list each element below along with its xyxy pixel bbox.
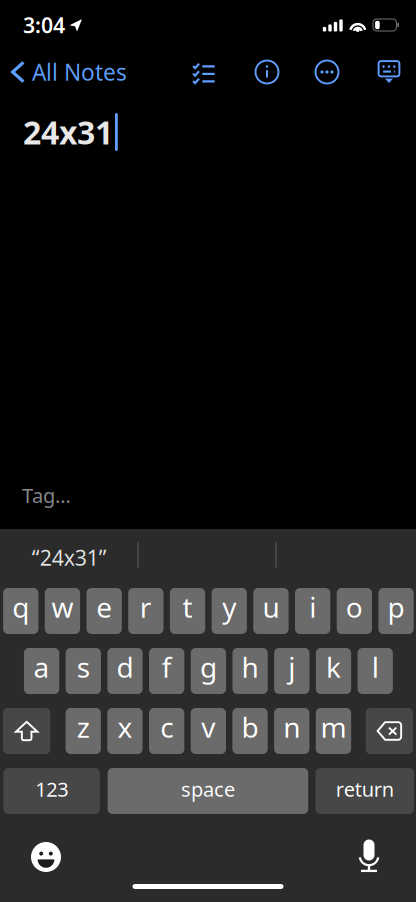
staticText: 3:04 [23,11,65,39]
button[interactable]: i [295,588,330,634]
button[interactable]: o [337,588,372,634]
staticText: m [320,708,346,746]
staticText: h [242,648,259,686]
button[interactable]: All Notes [0,51,133,93]
button[interactable]: w [45,588,80,634]
button[interactable]: y [212,588,247,634]
staticText: return [336,776,394,802]
staticText: b [241,708,258,746]
button[interactable]: m [316,708,351,754]
button[interactable]: z [66,708,101,754]
staticText: y [222,588,236,626]
staticText: g [200,648,217,686]
button[interactable]: n [274,708,309,754]
button[interactable]: “24x31” [0,535,139,580]
button[interactable]: s [66,648,101,694]
staticText: l [372,648,379,686]
staticText: e [96,588,112,626]
button[interactable]: j [274,648,309,694]
button[interactable]: r [128,588,163,634]
button[interactable]: a [24,648,59,694]
button[interactable]: Shift [3,708,50,754]
button[interactable]: Emoji [23,836,69,878]
staticText: w [51,588,73,626]
staticText: k [326,648,341,686]
button[interactable]: x [107,708,143,754]
button[interactable]: space [108,768,308,814]
button[interactable]: return [315,768,414,814]
staticText: z [77,708,90,746]
button[interactable]: Hide Keyboard [369,53,409,91]
staticText: All Notes [32,57,127,87]
button[interactable]: Info [247,53,287,91]
button[interactable]: v [191,708,226,754]
staticText: s [77,648,90,686]
staticText: x [117,708,132,746]
staticText: r [140,588,152,626]
button[interactable]: f [149,648,184,694]
staticText: “24x31” [32,543,107,572]
button[interactable]: b [232,708,268,754]
button[interactable]: e [86,588,122,634]
staticText: v [201,708,215,746]
button[interactable]: p [378,588,414,634]
staticText: 24x31 [23,111,113,153]
staticText: i [309,588,316,626]
staticText: f [162,648,172,686]
button[interactable]: k [316,648,351,694]
staticText: o [346,588,363,626]
staticText: space [181,776,235,802]
button[interactable]: Delete [366,708,413,754]
staticText: p [387,588,404,626]
staticText: j [288,648,295,686]
button[interactable]: Dictate [347,834,391,878]
staticText: n [283,708,300,746]
staticText: t [182,588,192,626]
button[interactable]: g [191,648,226,694]
button[interactable]: More [307,53,347,91]
button[interactable]: c [149,708,184,754]
button[interactable]: d [107,648,143,694]
staticText: u [262,588,279,626]
staticText: c [160,708,173,746]
button[interactable]: Checklist [184,53,224,91]
staticText: 123 [35,776,68,802]
staticText: d [116,648,133,686]
button[interactable]: 123 [3,768,100,814]
button[interactable]: u [253,588,289,634]
staticText: q [12,588,29,626]
button[interactable]: l [357,648,393,694]
staticText: a [34,648,50,686]
staticText: Tag… [22,482,71,509]
button[interactable]: q [3,588,38,634]
button[interactable]: h [232,648,268,694]
button[interactable]: t [170,588,205,634]
